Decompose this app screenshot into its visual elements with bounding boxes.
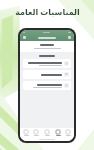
staticText: المناسبات العامة xyxy=(15,6,80,17)
button[interactable]: قائمة xyxy=(68,36,71,39)
button[interactable]: رجوع xyxy=(23,36,26,39)
button[interactable]: حسابي xyxy=(63,128,73,138)
button[interactable]: المناسبات xyxy=(53,128,63,138)
button[interactable] xyxy=(23,70,71,79)
button[interactable]: الرئيسية xyxy=(21,128,31,138)
button[interactable] xyxy=(23,81,71,90)
button[interactable] xyxy=(20,41,74,52)
button[interactable]: البحث xyxy=(31,128,41,138)
button[interactable] xyxy=(23,59,71,68)
button[interactable]: الإشعارات xyxy=(42,128,52,138)
